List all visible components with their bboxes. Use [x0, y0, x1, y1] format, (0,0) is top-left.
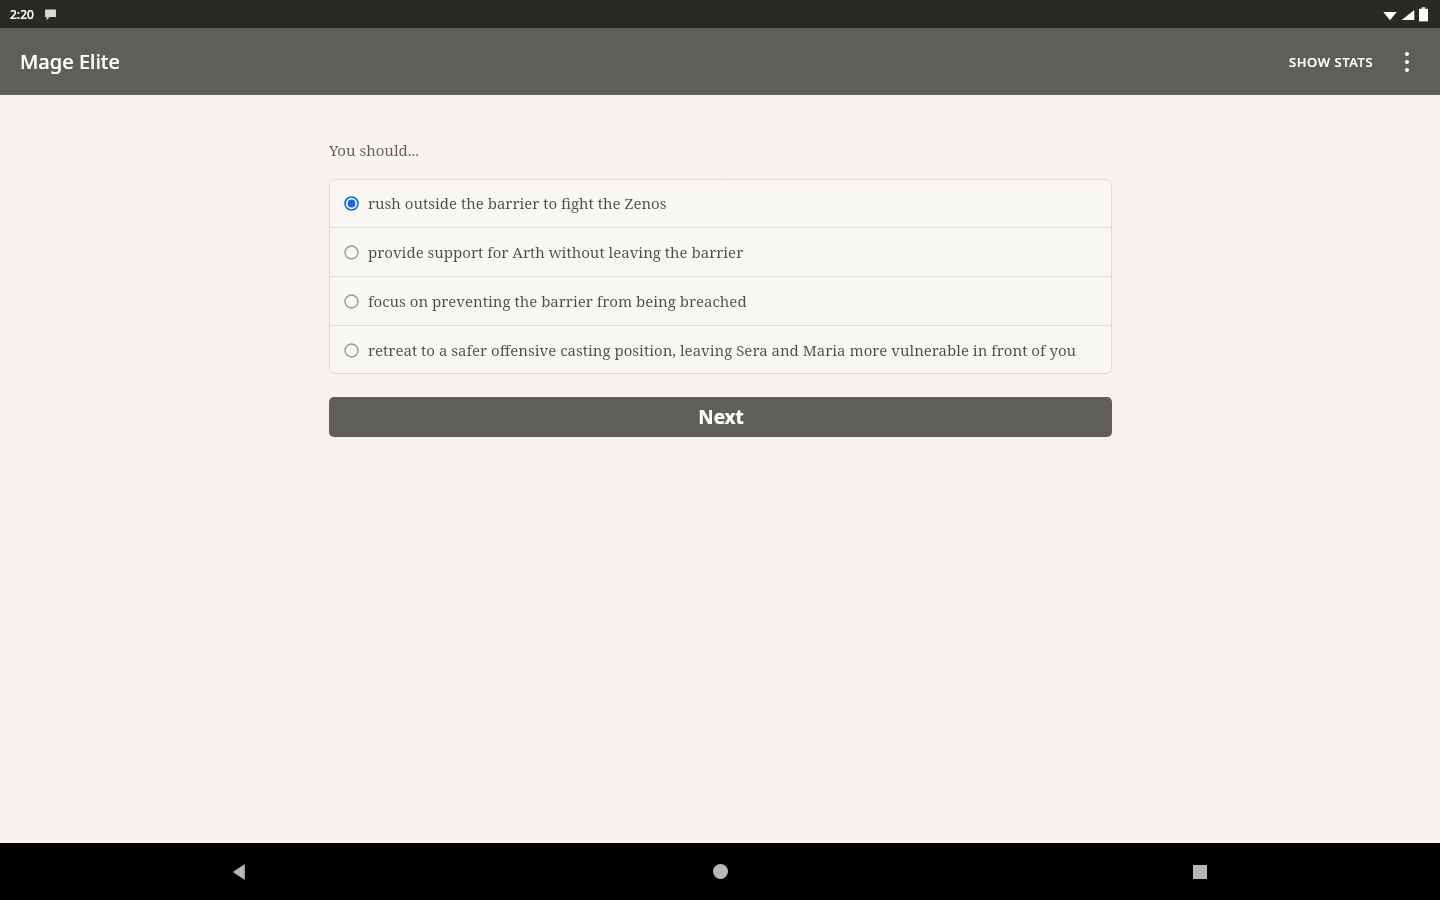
staticText: Next — [698, 404, 744, 430]
button[interactable]: rush outside the barrier to fight the Ze… — [329, 179, 1112, 227]
button[interactable]: provide support for Arth without leaving… — [329, 228, 1112, 276]
button[interactable]: SHOW STATS — [1279, 45, 1384, 79]
button[interactable]: Home — [480, 843, 960, 900]
staticText: provide support for Arth without leaving… — [368, 242, 744, 262]
staticText: You should... — [329, 140, 419, 160]
button[interactable]: Next — [329, 397, 1112, 437]
staticText: SHOW STATS — [1289, 53, 1374, 71]
button[interactable]: Recent apps — [960, 843, 1440, 900]
button[interactable]: focus on preventing the barrier from bei… — [329, 277, 1112, 325]
staticText: retreat to a safer offensive casting pos… — [368, 340, 1077, 360]
button[interactable]: More options — [1384, 39, 1430, 85]
staticText: Mage Elite — [20, 48, 120, 75]
button[interactable]: Back — [0, 843, 480, 900]
button[interactable]: retreat to a safer offensive casting pos… — [329, 326, 1112, 374]
staticText: 2:20 — [10, 6, 34, 22]
staticText: rush outside the barrier to fight the Ze… — [368, 193, 667, 213]
staticText: focus on preventing the barrier from bei… — [368, 291, 747, 311]
